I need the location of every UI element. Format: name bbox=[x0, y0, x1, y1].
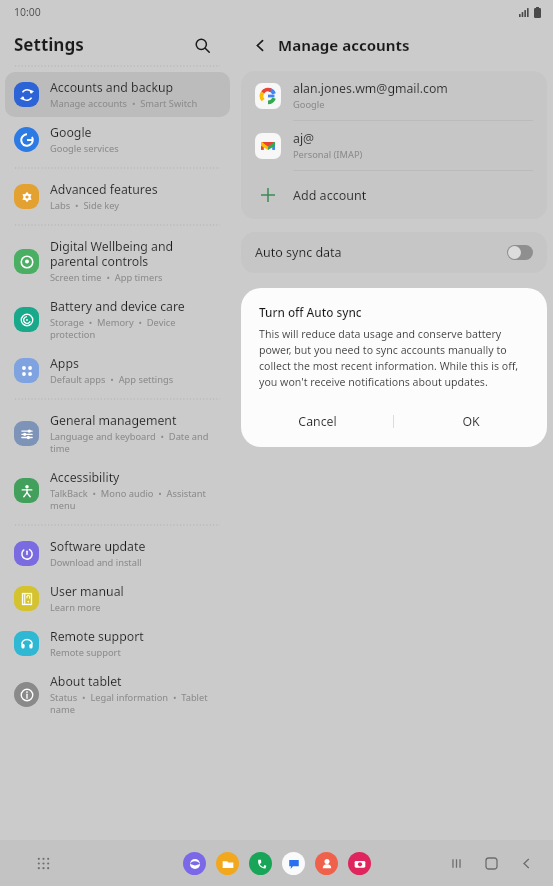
staticText: 10:00 bbox=[14, 5, 41, 19]
staticText: Storage • Memory • Device protection bbox=[50, 316, 222, 341]
staticText: Turn off Auto sync bbox=[259, 304, 362, 320]
button[interactable]: Home bbox=[478, 850, 504, 876]
button[interactable]: Recents bbox=[443, 850, 469, 876]
staticText: Learn more bbox=[50, 601, 101, 614]
button[interactable]: Battery and device care bbox=[5, 291, 230, 348]
staticText: Accounts and backup bbox=[50, 79, 174, 96]
staticText: Screen time • App timers bbox=[50, 271, 163, 284]
staticText: Google services bbox=[50, 142, 119, 155]
staticText: Settings bbox=[14, 33, 84, 56]
staticText: Battery and device care bbox=[50, 298, 185, 315]
staticText: TalkBack • Mono audio • Assistant menu bbox=[50, 487, 222, 512]
staticText: About tablet bbox=[50, 673, 122, 690]
button[interactable]: Software update bbox=[5, 531, 230, 576]
staticText: Add account bbox=[293, 187, 367, 204]
staticText: Software update bbox=[50, 538, 146, 555]
staticText: Manage accounts bbox=[278, 35, 410, 55]
button[interactable]: aj@ bbox=[241, 121, 547, 170]
button[interactable]: Search bbox=[187, 30, 217, 60]
button[interactable]: Back bbox=[513, 850, 539, 876]
staticText: alan.jones.wm@gmail.com bbox=[293, 80, 448, 97]
button[interactable]: Back bbox=[247, 32, 273, 58]
staticText: This will reduce data usage and conserve… bbox=[259, 327, 529, 389]
button[interactable]: All apps bbox=[30, 850, 56, 876]
button[interactable]: Apps bbox=[5, 348, 230, 393]
button[interactable]: contacts bbox=[315, 852, 338, 875]
button[interactable]: Accessibility bbox=[5, 462, 230, 519]
staticText: Default apps • App settings bbox=[50, 373, 174, 386]
staticText: aj@ bbox=[293, 130, 315, 147]
staticText: Download and install bbox=[50, 556, 142, 569]
staticText: Remote support bbox=[50, 628, 144, 645]
staticText: Digital Wellbeing and parental controls bbox=[50, 238, 222, 270]
button[interactable]: messages bbox=[282, 852, 305, 875]
button[interactable]: About tablet bbox=[5, 666, 230, 723]
staticText: Auto sync data bbox=[255, 244, 507, 261]
button[interactable]: internet bbox=[183, 852, 206, 875]
button[interactable]: Google bbox=[5, 117, 230, 162]
button[interactable]: User manual bbox=[5, 576, 230, 621]
button[interactable]: Cancel bbox=[241, 403, 393, 439]
staticText: OK bbox=[462, 413, 480, 430]
staticText: General management bbox=[50, 412, 177, 429]
button[interactable]: Remote support bbox=[5, 621, 230, 666]
staticText: Advanced features bbox=[50, 181, 158, 198]
button[interactable]: camera bbox=[348, 852, 371, 875]
staticText: Apps bbox=[50, 355, 79, 372]
staticText: Personal (IMAP) bbox=[293, 148, 363, 161]
button[interactable]: Auto sync data bbox=[241, 232, 547, 273]
staticText: Language and keyboard • Date and time bbox=[50, 430, 222, 455]
button[interactable]: Advanced features bbox=[5, 174, 230, 219]
staticText: User manual bbox=[50, 583, 124, 600]
staticText: Status • Legal information • Tablet name bbox=[50, 691, 222, 716]
staticText: Labs • Side key bbox=[50, 199, 120, 212]
button[interactable]: alan.jones.wm@gmail.com bbox=[241, 71, 547, 120]
button[interactable]: General management bbox=[5, 405, 230, 462]
staticText: Cancel bbox=[298, 413, 337, 430]
staticText: Manage accounts • Smart Switch bbox=[50, 97, 198, 110]
staticText: Google bbox=[50, 124, 92, 141]
button[interactable]: OK bbox=[394, 403, 547, 439]
button[interactable]: phone bbox=[249, 852, 272, 875]
button[interactable]: Accounts and backup bbox=[5, 72, 230, 117]
staticText: Accessibility bbox=[50, 469, 120, 486]
button[interactable]: files bbox=[216, 852, 239, 875]
button[interactable]: Digital Wellbeing and parental controls bbox=[5, 231, 230, 291]
button[interactable]: Add account bbox=[241, 171, 547, 219]
staticText: Google bbox=[293, 98, 325, 111]
staticText: Remote support bbox=[50, 646, 121, 659]
